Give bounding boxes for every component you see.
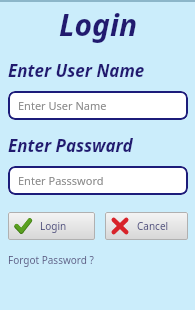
staticText: Enter User Name xyxy=(8,59,145,82)
staticText: Login xyxy=(40,219,67,233)
button[interactable]: Enter Passsword xyxy=(8,166,188,195)
staticText: Enter Passsword xyxy=(18,173,104,188)
staticText: Enter User Name xyxy=(18,98,107,113)
staticText: Forgot Password ? xyxy=(8,253,94,267)
staticText: Enter Passward xyxy=(8,134,133,157)
button[interactable]: Forgot Password ? xyxy=(8,252,94,268)
button[interactable]: Cancel xyxy=(105,212,188,240)
staticText: Login xyxy=(8,4,188,45)
button[interactable]: Enter User Name xyxy=(8,91,188,120)
staticText: Cancel xyxy=(137,219,169,233)
button[interactable]: Login xyxy=(8,212,95,240)
